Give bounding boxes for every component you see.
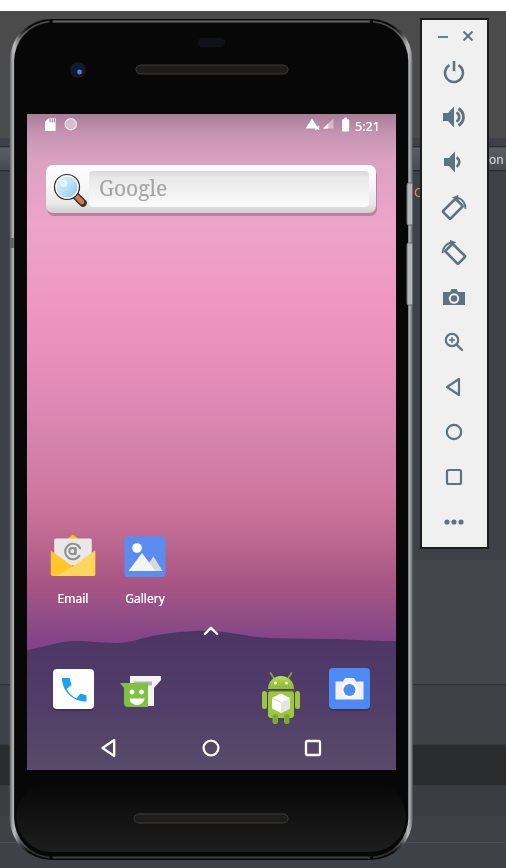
button[interactable]: Zoom (440, 328, 468, 356)
button[interactable]: Home (189, 726, 233, 770)
button[interactable]: Screenshot (440, 283, 468, 311)
staticText: Email (45, 590, 101, 606)
button[interactable]: More (440, 508, 468, 536)
button[interactable]: Gallery (117, 532, 173, 604)
staticText: 5:21 (355, 118, 380, 135)
button[interactable]: API Demos (255, 662, 307, 718)
button[interactable]: Volume up (440, 103, 468, 131)
button[interactable]: Minimise (433, 26, 453, 46)
button[interactable]: Close (458, 26, 478, 46)
button[interactable]: Phone (48, 662, 100, 718)
button[interactable]: Volume down (440, 148, 468, 176)
button[interactable]: Recents (291, 726, 335, 770)
button[interactable]: Google (46, 165, 376, 213)
staticText: Gallery (117, 590, 173, 606)
staticText: on (489, 151, 504, 167)
staticText: Google (99, 174, 168, 203)
button[interactable]: Back (87, 726, 131, 770)
button[interactable]: Messages (115, 662, 167, 718)
button[interactable]: Camera (324, 662, 376, 718)
button[interactable]: Power (440, 58, 468, 86)
button[interactable]: Back (440, 373, 468, 401)
button[interactable]: Rotate left (440, 193, 468, 221)
button[interactable]: Home (440, 418, 468, 446)
button[interactable]: Rotate right (440, 238, 468, 266)
button[interactable]: Overview (440, 463, 468, 491)
staticText: C (414, 183, 423, 201)
button[interactable]: Open app drawer (199, 619, 223, 643)
button[interactable]: Email (45, 532, 101, 604)
